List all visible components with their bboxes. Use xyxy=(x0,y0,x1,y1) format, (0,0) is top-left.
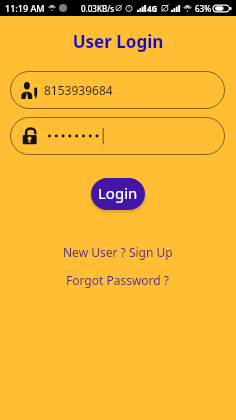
button[interactable]: Login xyxy=(91,178,145,210)
staticText: 0.03KB/s xyxy=(81,3,115,14)
staticText: 11:19 AM xyxy=(5,2,45,14)
staticText: 63% xyxy=(195,3,211,14)
other: User name xyxy=(21,82,38,99)
button[interactable]: New User ? Sign Up xyxy=(59,242,177,262)
staticText: Login xyxy=(98,183,138,203)
staticText: 8153939684 xyxy=(44,82,113,98)
staticText: User Login xyxy=(0,30,236,53)
other: Password xyxy=(21,127,38,145)
button[interactable]: Forgot Password ? xyxy=(62,270,174,290)
button[interactable]: Password xyxy=(10,117,225,155)
button[interactable]: User name xyxy=(10,71,225,109)
staticText: 4G xyxy=(147,3,158,14)
